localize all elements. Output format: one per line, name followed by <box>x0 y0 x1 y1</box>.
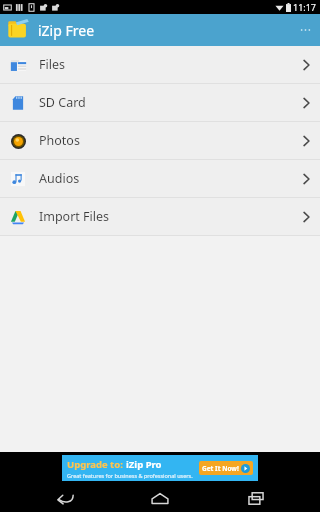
button[interactable]: Home <box>129 484 191 512</box>
button[interactable]: Upgrade to: <box>62 455 258 481</box>
staticText: SD Card <box>39 94 86 111</box>
button[interactable]: Photos <box>0 122 320 159</box>
button[interactable]: Audios <box>0 160 320 197</box>
staticText: 11:17 <box>293 1 317 13</box>
staticText: Import Files <box>39 208 110 225</box>
staticText: iZip Pro <box>126 458 162 471</box>
staticText: Great features for business & profession… <box>67 472 193 479</box>
staticText: Audios <box>39 170 80 187</box>
staticText: Upgrade to: <box>67 458 126 471</box>
button[interactable]: Get It Now! <box>199 461 253 475</box>
staticText: Files <box>39 56 65 73</box>
button[interactable]: Import Files <box>0 198 320 235</box>
staticText: Photos <box>39 132 80 149</box>
button[interactable]: Recent apps <box>225 484 287 512</box>
button[interactable]: More options <box>290 14 320 46</box>
button[interactable]: SD Card <box>0 84 320 121</box>
button[interactable]: Files <box>0 46 320 83</box>
button[interactable]: Back <box>34 484 96 512</box>
staticText: iZip Free <box>38 21 95 40</box>
staticText: Get It Now! <box>202 464 239 473</box>
